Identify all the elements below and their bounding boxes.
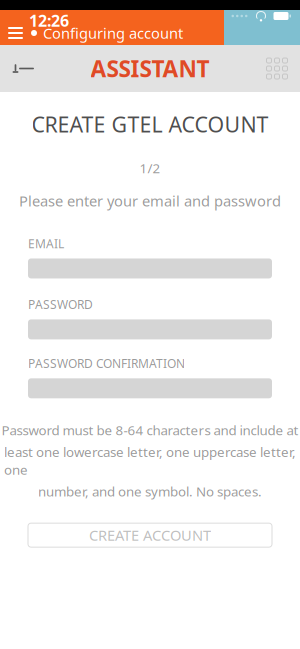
staticText: 1/2 [139,159,160,177]
staticText: CREATE ACCOUNT [89,525,211,545]
staticText: number, and one symbol. No spaces. [38,482,262,500]
button[interactable]: Apps [254,45,300,92]
staticText: Please enter your email and password [19,191,281,210]
staticText: Password must be 8-64 characters and inc… [1,421,298,439]
button[interactable]: CREATE ACCOUNT [28,523,272,547]
staticText: Configuring account [43,23,183,43]
staticText: ASSISTANT [90,53,209,83]
staticText: CREATE GTEL ACCOUNT [31,110,268,138]
button[interactable]: Menu [0,21,31,45]
button[interactable]: Back [0,45,46,92]
staticText: PASSWORD CONFIRMATION [28,355,185,371]
staticText: PASSWORD [28,296,93,312]
staticText: EMAIL [28,235,64,251]
staticText: 12:26 [29,10,69,31]
staticText: least one lowercase letter, one uppercas… [4,443,296,478]
